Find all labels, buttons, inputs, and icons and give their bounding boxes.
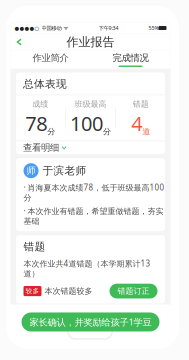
staticText: 错题订正 (117, 286, 149, 296)
staticText: 分 (103, 127, 111, 137)
staticText: ●●●●○ 中国移动 ᯤ (14, 24, 68, 32)
staticText: 总体表现 (23, 77, 67, 91)
staticText: 较多 (25, 287, 39, 295)
staticText: · 肖海夏本次成绩78，低于班级最高100分 (23, 182, 164, 203)
staticText: 作业报告 (66, 35, 114, 49)
staticText: 于滨老师 (42, 164, 86, 177)
staticText: 4 (131, 110, 142, 137)
staticText: 查看明细 (23, 142, 59, 153)
button[interactable]: 完成情况 (90, 50, 170, 68)
staticText: 师 (26, 165, 35, 176)
staticText: 班级最高 (74, 99, 106, 109)
staticText: 55% (148, 24, 158, 32)
staticText: 道 (142, 127, 150, 137)
button[interactable]: Back (10, 34, 28, 50)
button[interactable]: 家长确认，并奖励给孩子1学豆 (21, 312, 159, 331)
staticText: 78 (25, 110, 47, 137)
button[interactable]: 查看明细 (15, 141, 164, 154)
staticText: 下午9:34 (98, 24, 118, 32)
staticText: · 本次作业有错题，希望重做错题，夯实基础 (23, 206, 163, 226)
button[interactable]: 作业简介 (10, 50, 90, 68)
staticText: 本次作业共4道错题（本学期累计13道） (23, 258, 150, 279)
staticText: 错题 (133, 99, 149, 109)
button[interactable]: 错题订正 (109, 284, 157, 298)
staticText: 完成情况 (112, 52, 148, 64)
staticText: 成绩 (32, 99, 48, 109)
staticText: 100 (70, 110, 103, 137)
staticText: 家长确认，并奖励给孩子1学豆 (29, 316, 151, 328)
staticText: 本次错题较多 (44, 286, 92, 296)
staticText: 错题 (23, 240, 45, 253)
staticText: 分 (47, 127, 55, 137)
staticText: 作业简介 (32, 52, 68, 64)
